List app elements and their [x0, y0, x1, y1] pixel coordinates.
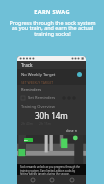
staticText: 2h 40m	[21, 121, 33, 126]
button[interactable]: Back	[28, 175, 37, 184]
button[interactable]: I'M READY	[24, 138, 33, 142]
staticText: close ✕	[66, 129, 78, 133]
staticText: No Weekly Target	[21, 72, 56, 78]
staticText: Training Overview	[21, 104, 55, 109]
button[interactable]: Recents	[67, 175, 76, 184]
button[interactable]: Set Reminders	[17, 94, 86, 101]
staticText: Set Reminders	[28, 95, 56, 100]
staticText: Reminders	[21, 87, 42, 92]
staticText: EARN SWAG	[34, 8, 70, 16]
staticText: 30h 14m	[35, 110, 68, 121]
staticText: Track	[21, 62, 33, 68]
staticText: 2h 15m	[39, 121, 51, 126]
staticText: SET WEEKLY TARGET	[21, 80, 54, 85]
staticText: Sock rewards unlock as you progress thro…	[20, 165, 81, 175]
staticText: I'M READY	[24, 138, 33, 142]
button[interactable]: Home	[47, 175, 56, 184]
button[interactable]: No Weekly Target	[17, 69, 86, 85]
staticText: Progress through the sock system as you …	[9, 19, 96, 38]
